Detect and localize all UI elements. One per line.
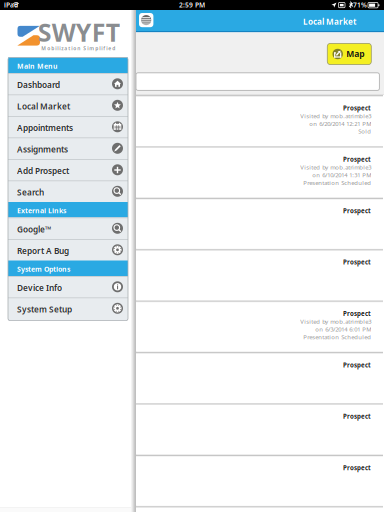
button[interactable]: Prospect [136,249,384,300]
button[interactable]: Device Info [8,276,128,297]
button[interactable]: Prospect [136,506,384,512]
button[interactable]: Prospect [136,352,384,403]
staticText: Visited by mob.atrimble3 [300,317,371,325]
staticText: Presentation Scheduled [303,333,371,341]
staticText: Prospect [343,309,371,318]
staticText: Google™ [17,224,51,235]
staticText: Sold [358,127,371,135]
staticText: Add Prospect [17,165,69,176]
staticText: on 6/10/2014 1:31 PM [312,171,371,179]
button[interactable]: Prospect [136,454,384,506]
staticText: Local Market [303,16,357,27]
button[interactable]: System Setup [8,297,128,319]
button[interactable]: Assignments [8,137,128,159]
staticText: Report A Bug [17,245,69,256]
staticText: Main Menu [17,61,58,71]
staticText: Prospect [343,258,371,266]
staticText: SWYFT [38,15,120,49]
staticText: Visited by mob.atrimble3 [300,163,371,171]
staticText: Visited by mob.atrimble3 [300,112,371,120]
staticText: Device Info [17,282,62,293]
button[interactable]: Prospect [136,197,384,249]
staticText: Map [346,48,364,60]
button[interactable]: Menu [139,13,153,27]
staticText: iPad [4,0,18,9]
staticText: Prospect [343,361,371,369]
button[interactable]: Google™ [8,217,128,239]
staticText: Prospect [343,412,371,421]
button[interactable]: Map [327,43,371,65]
staticText: Prospect [343,207,371,215]
button[interactable]: Prospect [136,95,384,146]
staticText: Assignments [17,144,68,155]
button[interactable]: Prospect [136,146,384,197]
button[interactable]: Prospect [136,403,384,454]
staticText: on 6/20/2014 12:21 PM [309,120,371,128]
staticText: M o b i l i z a t i o n S i m p l i f i … [41,45,115,52]
button[interactable]: Prospect [136,300,384,352]
button[interactable]: Appointments [8,116,128,137]
staticText: 71% [353,0,367,9]
staticText: 2:59 PM [179,0,205,9]
staticText: Prospect [343,155,371,164]
button[interactable]: Dashboard [8,73,128,94]
staticText: System Setup [17,304,72,315]
button[interactable]: Local Market [8,94,128,116]
staticText: Search [17,187,44,198]
button[interactable]: Add Prospect [8,159,128,180]
staticText: Presentation Scheduled [303,179,371,187]
staticText: on 6/3/2014 6:01 PM [315,325,371,333]
staticText: Local Market [17,101,70,112]
staticText: Appointments [17,122,73,133]
staticText: External Links [17,206,66,215]
staticText: Prospect [343,464,371,472]
button[interactable]: Report A Bug [8,239,128,260]
staticText: Dashboard [17,79,60,90]
staticText: Prospect [343,104,371,112]
staticText: System Options [17,264,70,274]
button[interactable]: Search [8,180,128,202]
